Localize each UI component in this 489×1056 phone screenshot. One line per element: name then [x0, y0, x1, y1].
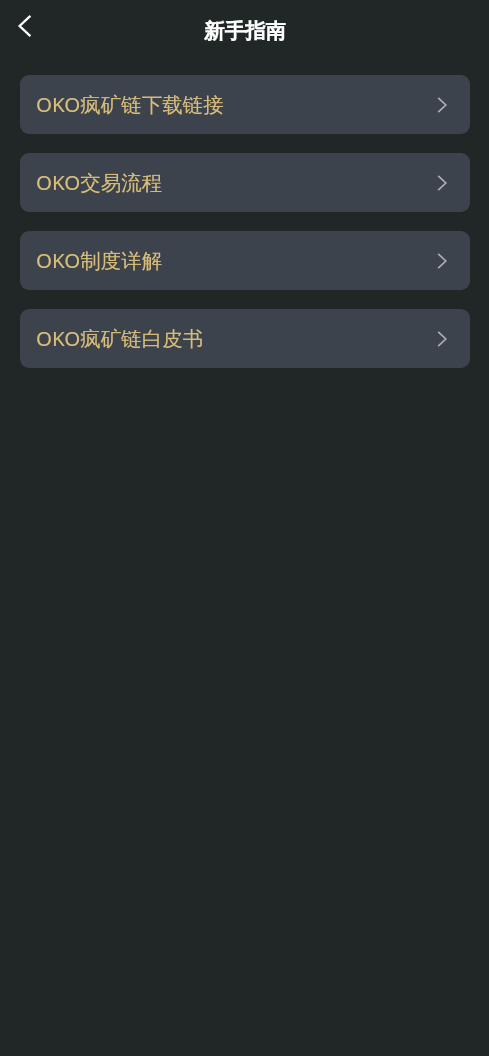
staticText: 新手指南: [204, 18, 286, 44]
staticText: OKO疯矿链下载链接: [36, 90, 436, 118]
button[interactable]: OKO制度详解: [20, 231, 470, 290]
staticText: OKO疯矿链白皮书: [36, 324, 436, 352]
button[interactable]: OKO交易流程: [20, 153, 470, 212]
staticText: OKO交易流程: [36, 168, 436, 196]
button[interactable]: OKO疯矿链下载链接: [20, 75, 470, 134]
button[interactable]: OKO疯矿链白皮书: [20, 309, 470, 368]
button[interactable]: Back: [8, 9, 42, 43]
staticText: OKO制度详解: [36, 246, 436, 274]
